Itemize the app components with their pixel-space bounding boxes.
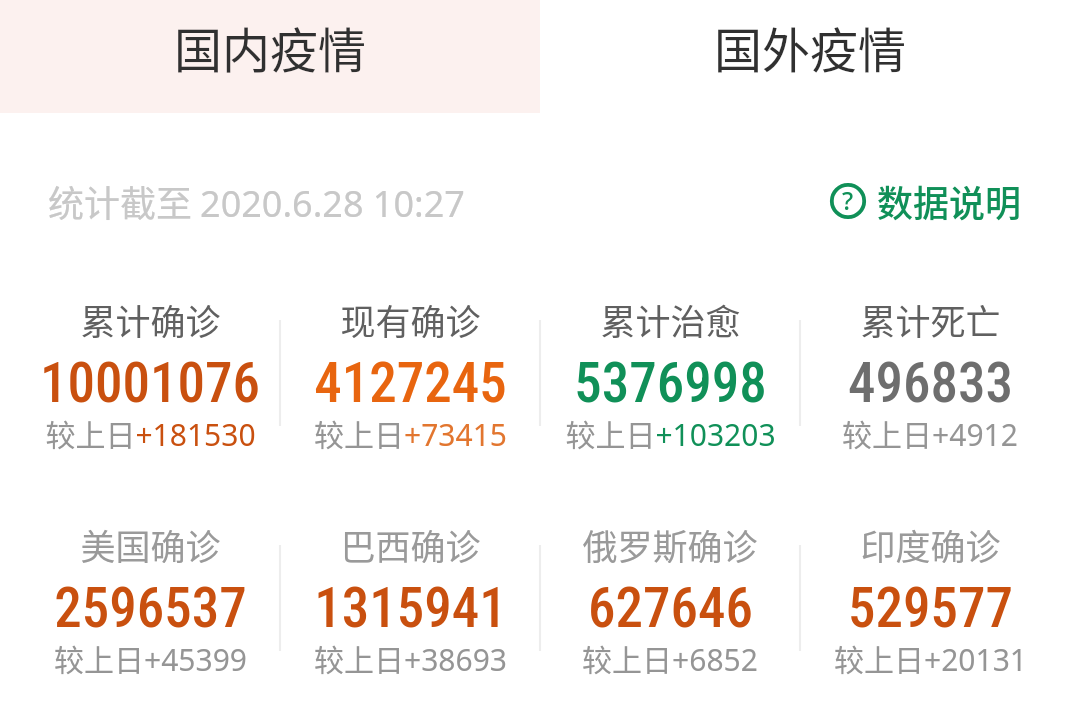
button[interactable]: 累计治愈 [540, 294, 800, 468]
staticText: 巴西确诊 [340, 519, 481, 563]
staticText: 俄罗斯确诊 [582, 519, 758, 563]
staticText: 496833 [848, 351, 1013, 415]
staticText: 累计死亡 [860, 294, 1001, 338]
button[interactable]: 累计确诊 [20, 294, 280, 468]
button[interactable]: 印度确诊 [800, 519, 1060, 693]
staticText: 现有确诊 [340, 294, 481, 338]
button[interactable]: 巴西确诊 [280, 519, 540, 693]
button[interactable]: 俄罗斯确诊 [540, 519, 800, 693]
staticText: ? [842, 183, 854, 217]
staticText: 4127245 [314, 351, 507, 415]
staticText: 529577 [848, 576, 1013, 640]
staticText: 美国确诊 [80, 519, 221, 563]
staticText: 较上日+73415 [314, 411, 507, 451]
staticText: 国内疫情 [174, 12, 367, 82]
staticText: 累计确诊 [80, 294, 221, 338]
staticText: 统计截至 2020.6.28 10:27 [48, 175, 465, 227]
staticText: 较上日+181530 [45, 411, 256, 451]
staticText: 较上日+38693 [314, 636, 507, 676]
button[interactable]: 累计死亡 [800, 294, 1060, 468]
button[interactable]: 数据说明 [830, 175, 1022, 227]
staticText: 5376998 [574, 351, 767, 415]
staticText: 较上日+4912 [842, 411, 1018, 451]
staticText: 较上日+6852 [582, 636, 758, 676]
button[interactable]: 国内疫情 [0, 0, 540, 113]
staticText: 累计治愈 [600, 294, 741, 338]
staticText: 较上日+45399 [54, 636, 247, 676]
other: 数据说明 [830, 183, 866, 219]
staticText: 1315941 [314, 576, 507, 640]
staticText: 较上日+20131 [834, 636, 1027, 676]
staticText: 数据说明 [877, 175, 1022, 227]
button[interactable]: 国外疫情 [540, 0, 1080, 113]
button[interactable]: 现有确诊 [280, 294, 540, 468]
button[interactable]: 美国确诊 [20, 519, 280, 693]
staticText: 2596537 [54, 576, 247, 640]
staticText: 627646 [588, 576, 753, 640]
staticText: 10001076 [40, 351, 260, 415]
staticText: 印度确诊 [860, 519, 1001, 563]
staticText: 较上日+103203 [565, 411, 776, 451]
staticText: 国外疫情 [714, 12, 907, 82]
